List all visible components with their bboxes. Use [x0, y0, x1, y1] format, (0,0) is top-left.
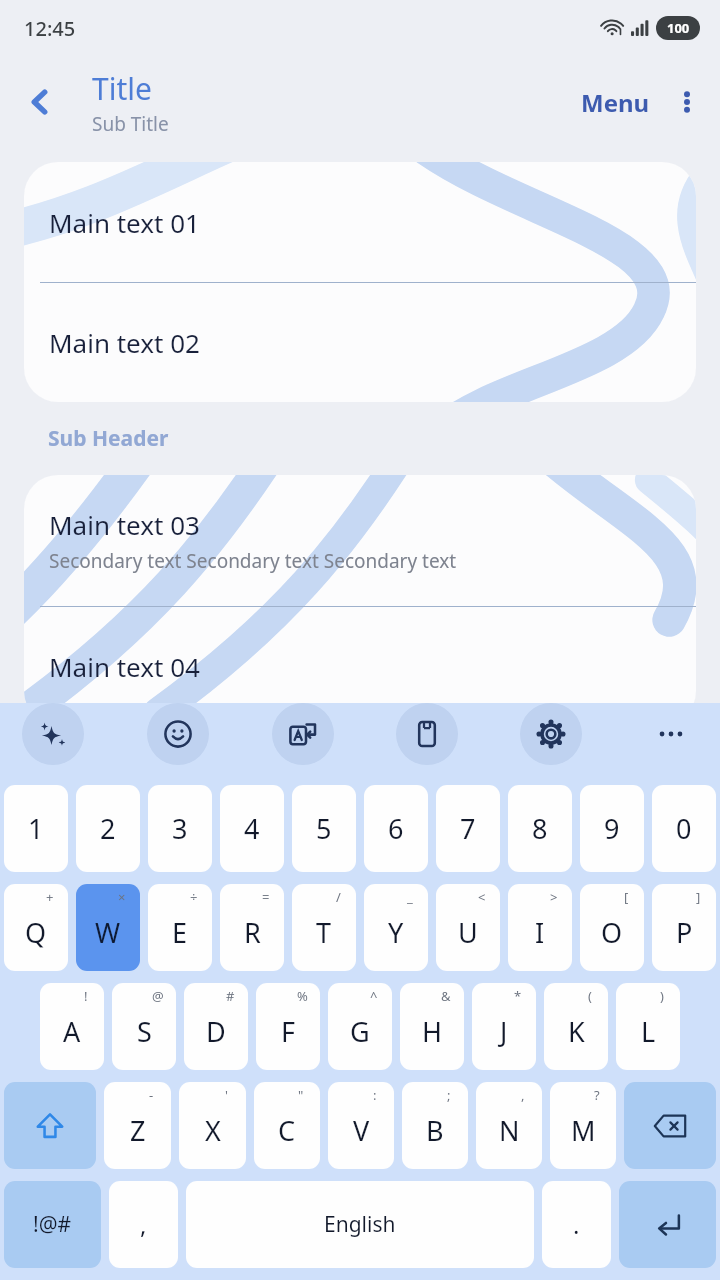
button[interactable]: ^: [328, 983, 392, 1070]
staticText: Q: [25, 914, 47, 951]
button[interactable]: AI suggestions: [22, 703, 84, 765]
staticText: 9: [604, 810, 620, 847]
button[interactable]: 6: [364, 785, 428, 872]
staticText: G: [350, 1013, 370, 1050]
button[interactable]: ): [616, 983, 680, 1070]
button[interactable]: 7: [436, 785, 500, 872]
staticText: 8: [532, 810, 548, 847]
button[interactable]: Translate: [272, 703, 334, 765]
staticText: ^: [370, 987, 378, 1005]
staticText: #: [226, 987, 235, 1005]
button[interactable]: Main text 03: [24, 475, 696, 606]
staticText: T: [316, 914, 332, 951]
button[interactable]: =: [220, 884, 284, 971]
staticText: !@#: [33, 1210, 72, 1239]
staticText: 4: [244, 810, 260, 847]
staticText: X: [205, 1112, 221, 1149]
button[interactable]: Settings: [520, 703, 582, 765]
button[interactable]: Shift: [4, 1082, 96, 1169]
staticText: S: [137, 1013, 152, 1050]
button[interactable]: *: [472, 983, 536, 1070]
staticText: Sub Header: [48, 424, 169, 453]
button[interactable]: Menu: [571, 76, 660, 129]
staticText: O: [601, 914, 623, 951]
staticText: Y: [388, 914, 404, 951]
staticText: Main text 02: [49, 325, 200, 360]
staticText: @: [152, 987, 164, 1005]
staticText: Secondary text Secondary text Secondary …: [49, 548, 457, 574]
staticText: Sub Title: [92, 111, 169, 137]
staticText: 6: [388, 810, 404, 847]
button[interactable]: ?: [550, 1082, 616, 1169]
button[interactable]: More options: [660, 75, 714, 129]
button[interactable]: %: [256, 983, 320, 1070]
button[interactable]: English: [186, 1181, 534, 1268]
staticText: I: [535, 914, 545, 951]
button[interactable]: 0: [652, 785, 716, 872]
button[interactable]: ': [179, 1082, 246, 1169]
button[interactable]: 4: [220, 785, 284, 872]
staticText: =: [262, 888, 270, 906]
staticText: E: [172, 914, 188, 951]
button[interactable]: Main text 04: [24, 607, 696, 725]
button[interactable]: ]: [652, 884, 716, 971]
button[interactable]: ": [254, 1082, 320, 1169]
button[interactable]: (: [544, 983, 608, 1070]
staticText: +: [46, 888, 54, 906]
staticText: C: [278, 1112, 296, 1149]
staticText: English: [324, 1210, 396, 1239]
staticText: Main text 01: [49, 205, 200, 240]
staticText: Z: [130, 1112, 146, 1149]
staticText: &: [441, 987, 451, 1005]
button[interactable]: ;: [402, 1082, 468, 1169]
button[interactable]: Main text 01: [24, 162, 696, 282]
button[interactable]: >: [508, 884, 572, 971]
button[interactable]: #: [184, 983, 248, 1070]
button[interactable]: Title: [92, 68, 169, 137]
button[interactable]: +: [4, 884, 68, 971]
button[interactable]: 3: [148, 785, 212, 872]
button[interactable]: 1: [4, 785, 68, 872]
staticText: ×: [118, 888, 126, 906]
button[interactable]: ,: [476, 1082, 542, 1169]
staticText: /: [336, 888, 341, 906]
button[interactable]: ×: [76, 884, 140, 971]
button[interactable]: More: [644, 707, 698, 761]
staticText: 100: [667, 19, 690, 37]
button[interactable]: .: [542, 1181, 611, 1268]
button[interactable]: ÷: [148, 884, 212, 971]
button[interactable]: @: [112, 983, 176, 1070]
button[interactable]: 2: [76, 785, 140, 872]
staticText: *: [514, 987, 522, 1005]
button[interactable]: &: [400, 983, 464, 1070]
staticText: J: [500, 1013, 508, 1050]
button[interactable]: Backspace: [624, 1082, 716, 1169]
button[interactable]: :: [328, 1082, 394, 1169]
button[interactable]: Back: [14, 76, 66, 128]
staticText: [: [624, 888, 629, 906]
button[interactable]: Main text 02: [24, 283, 696, 402]
staticText: ?: [594, 1086, 600, 1104]
button[interactable]: [: [580, 884, 644, 971]
button[interactable]: 9: [580, 785, 644, 872]
staticText: P: [676, 914, 693, 951]
button[interactable]: ,: [109, 1181, 178, 1268]
button[interactable]: <: [436, 884, 500, 971]
button[interactable]: !: [40, 983, 104, 1070]
button[interactable]: Enter: [619, 1181, 716, 1268]
staticText: ,: [140, 1208, 147, 1241]
staticText: L: [641, 1013, 656, 1050]
staticText: (: [588, 987, 592, 1005]
button[interactable]: _: [364, 884, 428, 971]
button[interactable]: 8: [508, 785, 572, 872]
button[interactable]: !@#: [4, 1181, 101, 1268]
button[interactable]: /: [292, 884, 356, 971]
button[interactable]: Clipboard: [396, 703, 458, 765]
staticText: 5: [316, 810, 332, 847]
staticText: Title: [92, 68, 152, 109]
button[interactable]: 5: [292, 785, 356, 872]
button[interactable]: -: [104, 1082, 171, 1169]
staticText: F: [281, 1013, 296, 1050]
staticText: U: [458, 914, 478, 951]
button[interactable]: Emoji: [147, 703, 209, 765]
